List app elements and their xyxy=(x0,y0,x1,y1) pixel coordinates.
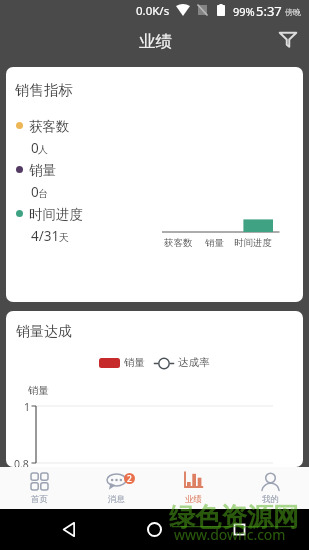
staticText: 业绩 xyxy=(139,31,172,52)
staticText: 首页 xyxy=(31,494,48,505)
button[interactable]: 销售指标 xyxy=(6,67,303,302)
staticText: 99% xyxy=(233,4,255,19)
button[interactable]: Back xyxy=(59,519,80,540)
button[interactable]: 销量达成 xyxy=(6,311,303,467)
staticText: 2 xyxy=(127,473,132,484)
button[interactable]: 业绩 xyxy=(155,467,232,509)
staticText: 时间进度 xyxy=(234,237,272,249)
staticText: 4/31 xyxy=(31,227,60,245)
button[interactable]: 2 xyxy=(78,467,155,509)
button[interactable]: Filter xyxy=(274,28,302,50)
button[interactable]: 我的 xyxy=(232,467,309,509)
staticText: 获客数 xyxy=(164,237,193,249)
staticText: 消息 xyxy=(108,494,125,505)
staticText: 销量 xyxy=(29,162,56,179)
staticText: 台 xyxy=(38,187,48,200)
staticText: 销量达成 xyxy=(16,323,72,341)
staticText: www.downc.com xyxy=(174,525,286,544)
staticText: 人 xyxy=(38,143,48,156)
staticText: 绿色资源网 xyxy=(169,501,299,534)
staticText: 我的 xyxy=(262,494,279,505)
button[interactable]: Recents xyxy=(229,519,250,540)
staticText: 业绩 xyxy=(185,494,202,505)
staticText: 销量 xyxy=(205,237,224,249)
staticText: 傍晚 xyxy=(285,7,301,17)
button[interactable]: 首页 xyxy=(0,467,78,509)
staticText: 1 xyxy=(24,400,31,414)
staticText: 0 xyxy=(31,139,39,157)
staticText: 天 xyxy=(59,231,69,244)
staticText: 0.8 xyxy=(14,457,29,467)
button[interactable]: Home xyxy=(144,519,165,540)
staticText: 销量 xyxy=(28,384,49,397)
staticText: 时间进度 xyxy=(29,206,83,223)
staticText: 销售指标 xyxy=(15,81,73,99)
staticText: 0 xyxy=(31,183,39,201)
staticText: 5:37 xyxy=(256,2,282,20)
staticText: 销量 xyxy=(124,356,145,369)
staticText: 0.0K/s xyxy=(136,3,170,19)
staticText: 达成率 xyxy=(178,356,210,369)
staticText: 获客数 xyxy=(29,118,70,135)
